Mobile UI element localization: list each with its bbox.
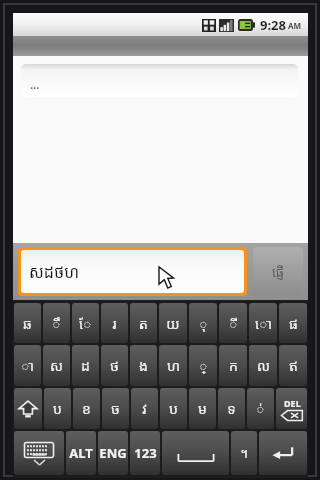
button[interactable]: ត bbox=[130, 303, 157, 343]
button[interactable]: ប bbox=[44, 388, 71, 429]
button[interactable]: Enter bbox=[259, 431, 307, 475]
staticText: ម bbox=[198, 399, 207, 418]
staticText: ផ្ញើ bbox=[272, 263, 284, 281]
button[interactable]: ហ bbox=[159, 345, 187, 386]
button[interactable]: ុ bbox=[189, 303, 217, 343]
staticText: ប bbox=[53, 399, 62, 418]
staticText: ទ bbox=[227, 399, 236, 418]
staticText: ា bbox=[21, 356, 34, 375]
button[interactable]: ... bbox=[21, 64, 298, 97]
staticText: ថ bbox=[110, 356, 119, 375]
button[interactable]: យ bbox=[159, 303, 187, 343]
button[interactable]: ោ bbox=[249, 303, 277, 343]
staticText: រ bbox=[112, 314, 117, 333]
button[interactable]: ខ bbox=[73, 388, 100, 429]
button[interactable]: Space bbox=[162, 431, 229, 475]
staticText: ប bbox=[169, 399, 178, 418]
staticText: ឥ bbox=[289, 356, 298, 375]
button[interactable]: ENG bbox=[98, 431, 128, 475]
button[interactable]: Hide keyboard bbox=[14, 431, 64, 475]
staticText: ដ bbox=[81, 356, 90, 375]
staticText: ក bbox=[229, 356, 238, 375]
button[interactable]: ្ bbox=[189, 345, 217, 386]
staticText: 9:28 bbox=[260, 16, 286, 34]
button[interactable]: ទ bbox=[218, 388, 245, 429]
staticText: ឹ bbox=[52, 314, 61, 333]
staticText: ុ bbox=[199, 314, 208, 333]
button[interactable]: ា bbox=[14, 345, 41, 386]
staticText: វ bbox=[142, 399, 147, 418]
button[interactable]: ច bbox=[102, 388, 129, 429]
staticText: 123 bbox=[134, 444, 157, 462]
staticText: ់ bbox=[256, 399, 265, 418]
button[interactable]: ឹ bbox=[43, 303, 70, 343]
staticText: ALT bbox=[69, 444, 93, 462]
button[interactable]: ក bbox=[219, 345, 247, 386]
button[interactable]: ផ្ញើ bbox=[253, 247, 303, 296]
button[interactable]: ។ bbox=[231, 431, 257, 475]
staticText: ្ bbox=[199, 356, 208, 375]
staticText: ច bbox=[111, 399, 120, 418]
button[interactable]: ី bbox=[219, 303, 247, 343]
staticText: ោ bbox=[255, 314, 272, 333]
button[interactable]: វ bbox=[131, 388, 158, 429]
staticText: ផ bbox=[289, 314, 298, 333]
staticText: យ bbox=[166, 314, 180, 333]
button[interactable]: ស bbox=[43, 345, 70, 386]
button[interactable]: Shift bbox=[14, 388, 42, 429]
staticText: ង bbox=[139, 356, 148, 375]
staticText: ឆ bbox=[23, 314, 32, 333]
button[interactable]: ដ bbox=[72, 345, 99, 386]
staticText: ស bbox=[50, 356, 63, 375]
button[interactable]: ផ bbox=[279, 303, 307, 343]
staticText: ហ bbox=[167, 356, 180, 375]
staticText: ល bbox=[257, 356, 270, 375]
button[interactable]: ែ bbox=[72, 303, 99, 343]
button[interactable]: ប bbox=[160, 388, 187, 429]
staticText: ត bbox=[139, 314, 148, 333]
button[interactable]: 123 bbox=[130, 431, 160, 475]
button[interactable]: ម bbox=[189, 388, 216, 429]
button[interactable]: ង bbox=[130, 345, 157, 386]
button[interactable]: ឥ bbox=[279, 345, 307, 386]
staticText: ែ bbox=[79, 314, 92, 333]
button[interactable]: ់ bbox=[247, 388, 274, 429]
staticText: AM bbox=[288, 20, 302, 31]
staticText: ខ bbox=[82, 399, 91, 418]
staticText: ... bbox=[30, 77, 40, 92]
button[interactable]: ល bbox=[249, 345, 277, 386]
button[interactable]: ឆ bbox=[14, 303, 41, 343]
button[interactable]: Delete bbox=[276, 388, 307, 429]
button[interactable]: ALT bbox=[66, 431, 96, 475]
button[interactable]: ថ bbox=[101, 345, 128, 386]
button[interactable]: សដថហ bbox=[21, 250, 244, 293]
staticText: ី bbox=[229, 314, 238, 333]
staticText: DEL bbox=[284, 397, 301, 409]
staticText: ។ bbox=[240, 444, 248, 462]
staticText: ENG bbox=[99, 444, 127, 462]
button[interactable]: រ bbox=[101, 303, 128, 343]
staticText: សដថហ bbox=[29, 261, 80, 283]
